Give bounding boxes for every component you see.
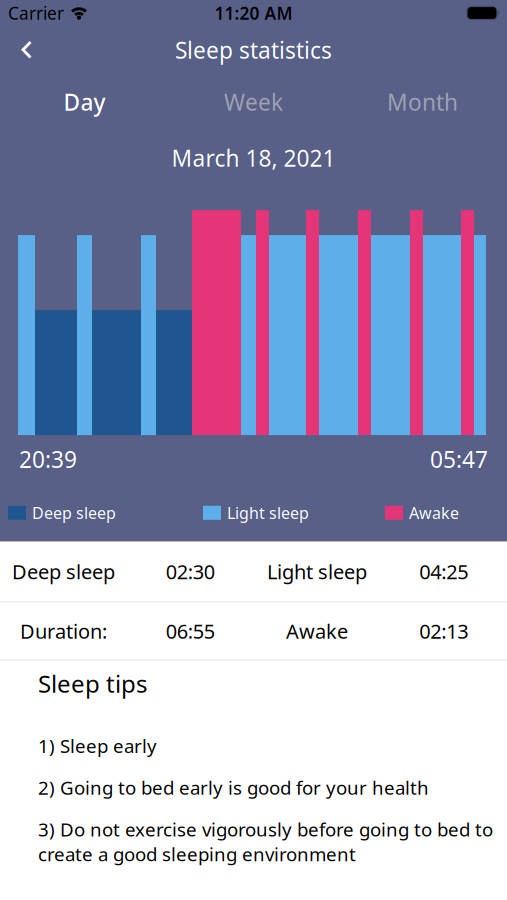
staticText: 04:25: [419, 558, 468, 585]
staticText: Awake: [286, 618, 348, 644]
staticText: 11:20 AM: [214, 1, 292, 24]
staticText: Awake: [409, 502, 459, 523]
staticText: Duration:: [20, 618, 107, 644]
staticText: March 18, 2021: [171, 143, 335, 173]
staticText: Sleep statistics: [175, 35, 332, 65]
staticText: Deep sleep: [32, 502, 116, 523]
staticText: 02:13: [419, 618, 468, 644]
button[interactable]: Month: [338, 82, 507, 122]
staticText: Week: [224, 87, 283, 117]
button[interactable]: Week: [169, 82, 338, 122]
staticText: 1) Sleep early: [38, 733, 157, 758]
button[interactable]: Day: [0, 82, 169, 122]
staticText: 20:39: [19, 444, 77, 474]
staticText: Light sleep: [267, 558, 367, 585]
staticText: 3) Do not exercise vigorously before goi…: [38, 817, 493, 866]
staticText: Carrier: [8, 1, 64, 24]
staticText: 02:30: [166, 558, 215, 585]
staticText: 05:47: [430, 444, 488, 474]
staticText: Day: [63, 87, 105, 117]
staticText: 06:55: [166, 618, 215, 644]
staticText: Sleep tips: [38, 667, 147, 699]
staticText: Month: [387, 87, 458, 117]
button[interactable]: Back: [0, 28, 46, 72]
staticText: Light sleep: [227, 502, 309, 523]
staticText: 2) Going to bed early is good for your h…: [38, 775, 429, 800]
staticText: Deep sleep: [12, 558, 115, 585]
